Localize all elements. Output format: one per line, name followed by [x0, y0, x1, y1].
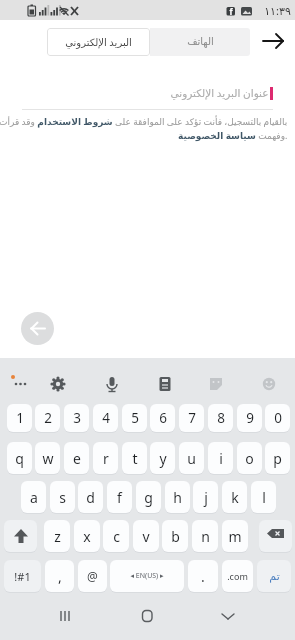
button[interactable]: تم	[257, 560, 291, 592]
staticText: s	[59, 488, 66, 507]
staticText: 3	[73, 409, 81, 427]
staticText: v	[142, 527, 150, 546]
staticText: !#1	[14, 569, 31, 584]
button[interactable]: m	[222, 520, 248, 552]
button[interactable]: u	[179, 442, 204, 474]
staticText: ◂ EN(US) ▸	[130, 571, 164, 581]
button[interactable]	[201, 368, 231, 400]
button[interactable]: 1	[7, 404, 32, 432]
button[interactable]	[125, 602, 169, 638]
staticText: p	[273, 449, 282, 468]
button[interactable]: n	[192, 520, 218, 552]
button[interactable]: z	[44, 520, 70, 552]
button[interactable]: j	[193, 481, 218, 513]
staticText: b	[171, 527, 180, 546]
button[interactable]: 8	[208, 404, 233, 432]
staticText: c	[113, 527, 120, 546]
button[interactable]: r	[93, 442, 118, 474]
staticText: x	[83, 527, 91, 546]
staticText: u	[187, 449, 196, 468]
button[interactable]: f	[107, 481, 132, 513]
staticText: .	[201, 567, 205, 586]
staticText: 9	[246, 409, 254, 427]
button[interactable]: ◂ EN(US) ▸	[110, 560, 184, 592]
staticText: ١١:٣٩	[264, 3, 291, 18]
staticText: 6	[159, 409, 167, 427]
button[interactable]: عنوان البريد الإلكتروني	[0, 82, 295, 104]
button[interactable]	[4, 520, 37, 552]
button[interactable]: g	[136, 481, 161, 513]
button[interactable]: h	[165, 481, 190, 513]
staticText: تم	[269, 570, 280, 583]
button[interactable]: y	[150, 442, 175, 474]
button[interactable]: a	[21, 481, 46, 513]
button[interactable]	[254, 368, 284, 400]
staticText: 1	[16, 409, 24, 427]
button[interactable]	[150, 368, 180, 400]
staticText: 7	[188, 409, 196, 427]
staticText: r	[103, 449, 109, 468]
button[interactable]: i	[208, 442, 233, 474]
staticText: n	[201, 527, 210, 546]
button[interactable]: d	[78, 481, 103, 513]
staticText: a	[30, 488, 38, 507]
button[interactable]: q	[7, 442, 32, 474]
staticText: عنوان البريد الإلكتروني	[170, 86, 269, 100]
staticText: w	[42, 449, 54, 468]
staticText: q	[15, 449, 24, 468]
button[interactable]: .com	[222, 560, 253, 592]
button[interactable]: .	[188, 560, 218, 592]
button[interactable]: 0	[265, 404, 290, 432]
staticText: g	[144, 488, 153, 507]
button[interactable]	[43, 368, 73, 400]
staticText: h	[173, 488, 182, 507]
button[interactable]	[259, 520, 292, 552]
button[interactable]: e	[64, 442, 89, 474]
button[interactable]: p	[265, 442, 290, 474]
button[interactable]: w	[35, 442, 60, 474]
button[interactable]: 5	[122, 404, 147, 432]
staticText: f	[117, 488, 122, 507]
button[interactable]: s	[50, 481, 75, 513]
button[interactable]	[97, 368, 127, 400]
button[interactable]: t	[122, 442, 147, 474]
button[interactable]: ,	[45, 560, 74, 592]
staticText: وفهمت سياسة الخصوصية.	[178, 129, 288, 141]
staticText: o	[245, 449, 254, 468]
button[interactable]: k	[222, 481, 247, 513]
button[interactable]: o	[237, 442, 262, 474]
staticText: z	[54, 527, 61, 546]
button[interactable]: الهاتف	[150, 28, 250, 56]
button[interactable]	[206, 602, 250, 638]
button[interactable]: 9	[237, 404, 262, 432]
staticText: j	[204, 488, 208, 507]
staticText: e	[73, 449, 81, 468]
staticText: t	[132, 449, 138, 468]
button[interactable]: @	[78, 560, 107, 592]
button[interactable]: 3	[64, 404, 89, 432]
staticText: 8	[217, 409, 225, 427]
button[interactable]	[43, 602, 87, 638]
button[interactable]: b	[162, 520, 188, 552]
button[interactable]: v	[133, 520, 159, 552]
staticText: البريد الإلكتروني	[65, 35, 132, 49]
button[interactable]: l	[251, 481, 276, 513]
staticText: l	[262, 488, 266, 507]
staticText: d	[86, 488, 95, 507]
staticText: الهاتف	[187, 36, 214, 48]
button[interactable]: x	[74, 520, 100, 552]
button[interactable]: !#1	[4, 560, 41, 592]
button[interactable]	[5, 368, 35, 400]
button[interactable]: 6	[150, 404, 175, 432]
button[interactable]: 7	[179, 404, 204, 432]
staticText: y	[159, 449, 167, 468]
button[interactable]: البريد الإلكتروني	[47, 28, 150, 56]
staticText: i	[219, 449, 223, 468]
button[interactable]: 4	[93, 404, 118, 432]
staticText: .com	[227, 570, 248, 582]
button[interactable]: 2	[35, 404, 60, 432]
button[interactable]: c	[103, 520, 129, 552]
button[interactable]	[21, 312, 54, 345]
button[interactable]	[258, 30, 290, 54]
staticText: بالقيام بالتسجيل، فأنت تؤكد على الموافقة…	[0, 115, 288, 127]
